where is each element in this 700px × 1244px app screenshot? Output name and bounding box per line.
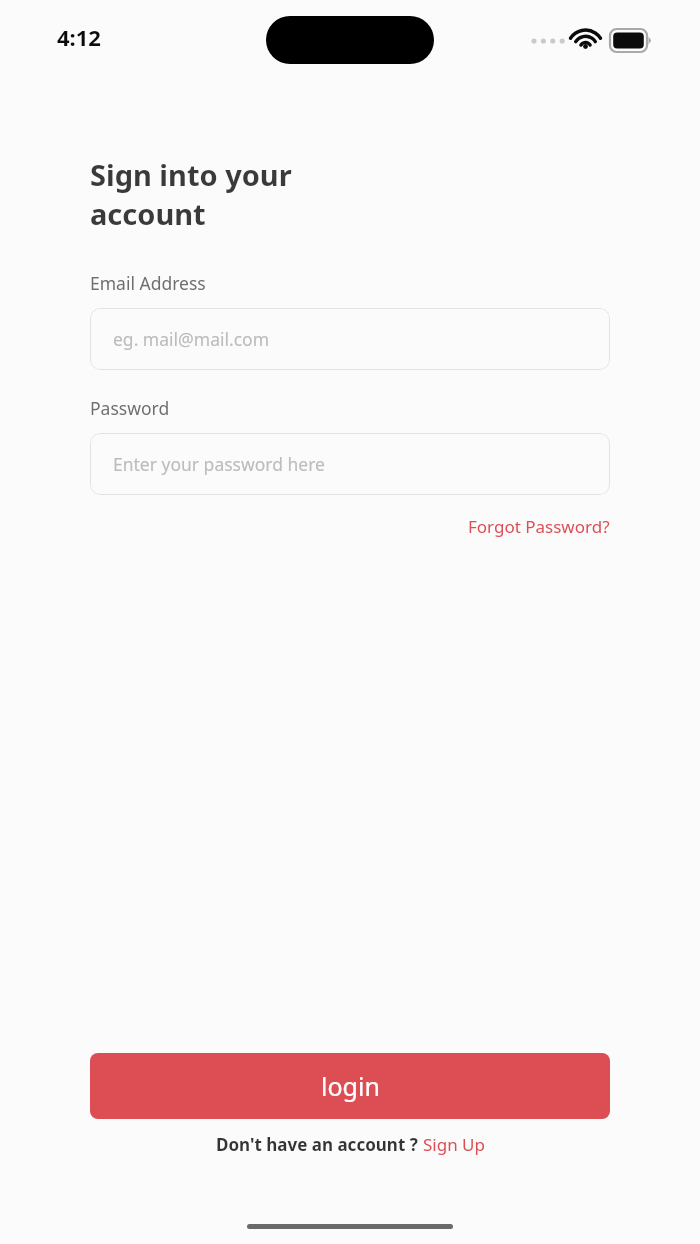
staticText: Don't have an account ? xyxy=(216,1133,423,1156)
staticText: Sign into your account xyxy=(90,155,292,233)
staticText: eg. mail@mail.com xyxy=(113,327,270,351)
staticText: Sign Up xyxy=(423,1133,485,1156)
button[interactable]: eg. mail@mail.com xyxy=(90,308,610,370)
button[interactable]: Sign Up xyxy=(423,1133,485,1156)
staticText: login xyxy=(321,1069,380,1103)
button[interactable]: Enter your password here xyxy=(90,433,610,495)
staticText: Password xyxy=(90,396,170,420)
staticText: Enter your password here xyxy=(113,452,325,476)
staticText: Forgot Password? xyxy=(468,515,610,538)
staticText: Email Address xyxy=(90,271,206,295)
button[interactable]: Forgot Password? xyxy=(468,515,610,538)
button[interactable]: login xyxy=(90,1053,610,1119)
staticText: 4:12 xyxy=(57,22,101,52)
